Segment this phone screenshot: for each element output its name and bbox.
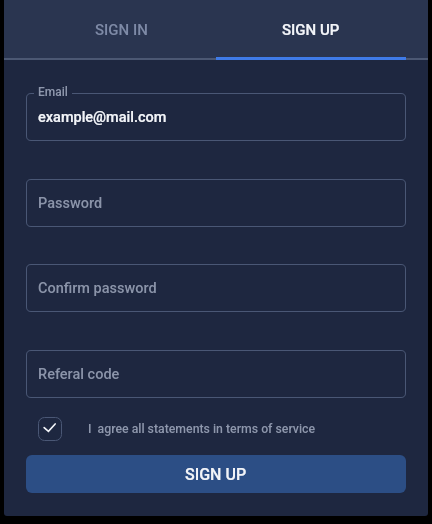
staticText: SIGN UP <box>282 21 340 39</box>
button[interactable]: example@mail.com <box>26 93 406 141</box>
staticText: Password <box>38 195 103 212</box>
staticText: I agree all statements in terms of servi… <box>88 422 316 436</box>
button[interactable]: Confirm password <box>26 264 406 312</box>
button[interactable]: SIGN UP <box>216 0 406 60</box>
button[interactable]: I agree all statements in terms of servi… <box>38 417 62 441</box>
staticText: SIGN IN <box>95 21 148 39</box>
staticText: SIGN UP <box>185 465 247 484</box>
button[interactable]: Password <box>26 179 406 227</box>
staticText: Referal code <box>38 366 120 383</box>
staticText: example@mail.com <box>38 109 167 126</box>
button[interactable]: SIGN UP <box>26 455 406 493</box>
staticText: Email <box>38 85 68 99</box>
staticText: Confirm password <box>38 280 157 297</box>
button[interactable]: Referal code <box>26 350 406 398</box>
button[interactable]: SIGN IN <box>26 0 216 60</box>
